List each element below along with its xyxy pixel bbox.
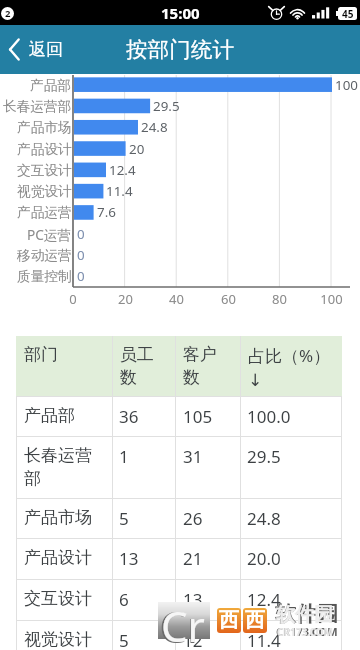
button[interactable]: 产品设计 bbox=[16, 538, 342, 579]
staticText: 13 bbox=[183, 588, 203, 611]
staticText: 2 bbox=[5, 7, 11, 20]
staticText: Cr bbox=[159, 596, 205, 650]
staticText: 26 bbox=[183, 507, 203, 530]
staticText: 45 bbox=[342, 7, 354, 20]
staticText: 31 bbox=[183, 445, 203, 468]
staticText: 占比（%） ↓ bbox=[248, 344, 331, 390]
staticText: 11.4 bbox=[247, 629, 281, 650]
staticText: 0 bbox=[69, 290, 77, 308]
staticText: 质量控制 bbox=[17, 268, 72, 285]
staticText: 29.5 bbox=[153, 97, 180, 115]
staticText: 100 bbox=[320, 290, 343, 308]
staticText: 12 bbox=[183, 629, 203, 650]
staticText: 西 bbox=[219, 608, 239, 633]
button[interactable]: 交互设计 bbox=[16, 579, 342, 620]
staticText: 产品设计 bbox=[17, 141, 72, 158]
staticText: 100 bbox=[335, 76, 358, 94]
staticText: 产品市场 bbox=[17, 119, 72, 136]
staticText: 交互设计 bbox=[17, 162, 72, 179]
staticText: 产品部 bbox=[30, 77, 72, 94]
staticText: 20.0 bbox=[247, 547, 281, 570]
staticText: 产品运营 bbox=[17, 204, 72, 221]
staticText: 80 bbox=[272, 290, 287, 308]
staticText: 产品市场 bbox=[24, 507, 92, 528]
staticText: PC运营 bbox=[27, 225, 72, 244]
staticText: 24.8 bbox=[141, 118, 168, 136]
staticText: 5 bbox=[119, 507, 129, 530]
staticText: 6 bbox=[119, 588, 129, 611]
staticText: 移动运营 bbox=[17, 247, 72, 264]
staticText: 0 bbox=[77, 267, 85, 285]
staticText: 长春运营部 bbox=[3, 98, 72, 115]
staticText: 按部门统计 bbox=[126, 36, 234, 63]
staticText: 29.5 bbox=[247, 445, 281, 468]
staticText: 5 bbox=[119, 629, 129, 650]
staticText: 产品设计 bbox=[24, 547, 92, 568]
staticText: 12.4 bbox=[247, 588, 281, 611]
staticText: 36 bbox=[119, 405, 139, 428]
staticText: 11.4 bbox=[106, 182, 133, 200]
staticText: 软件园 bbox=[276, 603, 333, 627]
staticText: 1 bbox=[119, 445, 129, 468]
button[interactable]: 视觉设计 bbox=[16, 620, 342, 650]
staticText: 视觉设计 bbox=[24, 629, 92, 650]
staticText: 客户 数 bbox=[183, 344, 217, 388]
staticText: 视觉设计 bbox=[17, 183, 72, 200]
button[interactable]: 返回 bbox=[0, 39, 77, 60]
staticText: 15:00 bbox=[161, 3, 200, 23]
staticText: 交互设计 bbox=[24, 588, 92, 609]
staticText: CR173.COM bbox=[276, 624, 338, 639]
button[interactable]: 长春运营部 bbox=[16, 436, 342, 498]
staticText: 长春运营部 bbox=[24, 445, 103, 489]
staticText: 21 bbox=[183, 547, 203, 570]
staticText: 返回 bbox=[29, 39, 63, 60]
staticText: 100.0 bbox=[247, 405, 291, 428]
staticText: 7.6 bbox=[97, 203, 116, 221]
staticText: 40 bbox=[169, 290, 184, 308]
staticText: 105 bbox=[183, 405, 213, 428]
staticText: 20 bbox=[129, 140, 145, 158]
staticText: 0 bbox=[77, 225, 85, 243]
button[interactable]: 产品部 bbox=[16, 396, 342, 437]
staticText: 0 bbox=[77, 246, 85, 264]
staticText: 12.4 bbox=[109, 161, 136, 179]
staticText: 员工 数 bbox=[120, 344, 154, 388]
staticText: 西 bbox=[245, 608, 265, 633]
staticText: 产品部 bbox=[24, 405, 75, 426]
staticText: 13 bbox=[119, 547, 139, 570]
staticText: Cr bbox=[161, 597, 205, 650]
staticText: 60 bbox=[221, 290, 236, 308]
staticText: 部门 bbox=[24, 344, 58, 365]
staticText: 24.8 bbox=[247, 507, 281, 530]
staticText: 20 bbox=[118, 290, 133, 308]
staticText: CR173.COM bbox=[277, 625, 334, 639]
button[interactable]: 产品市场 bbox=[16, 498, 342, 539]
staticText: 软件园 bbox=[275, 601, 338, 627]
